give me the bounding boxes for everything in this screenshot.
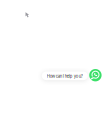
- button[interactable]: How can I help you?: [42, 71, 88, 80]
- button[interactable]: Chat on WhatsApp: [89, 69, 102, 81]
- staticText: How can I help you?: [47, 74, 83, 79]
